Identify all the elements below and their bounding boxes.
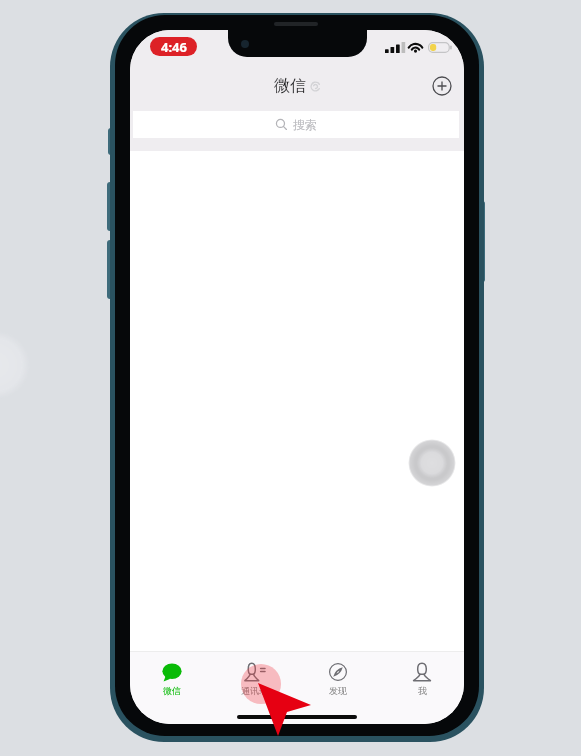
staticText: 搜索 bbox=[293, 117, 317, 132]
staticText: 我 bbox=[418, 685, 427, 696]
staticText: 发现 bbox=[329, 685, 347, 696]
button[interactable]: Add bbox=[426, 70, 458, 102]
button[interactable]: AssistiveTouch bbox=[408, 439, 456, 487]
button[interactable]: 我 bbox=[380, 654, 464, 704]
button[interactable]: 发现 bbox=[296, 654, 380, 704]
staticText: 微信 bbox=[163, 685, 181, 696]
staticText: 微信 bbox=[274, 76, 306, 96]
button[interactable]: 微信 bbox=[130, 654, 213, 704]
staticText: 通讯录 bbox=[241, 685, 268, 696]
button[interactable]: 搜索 bbox=[133, 111, 459, 138]
staticText: 4:46 bbox=[161, 38, 187, 56]
button[interactable]: 通讯录 bbox=[213, 654, 296, 704]
